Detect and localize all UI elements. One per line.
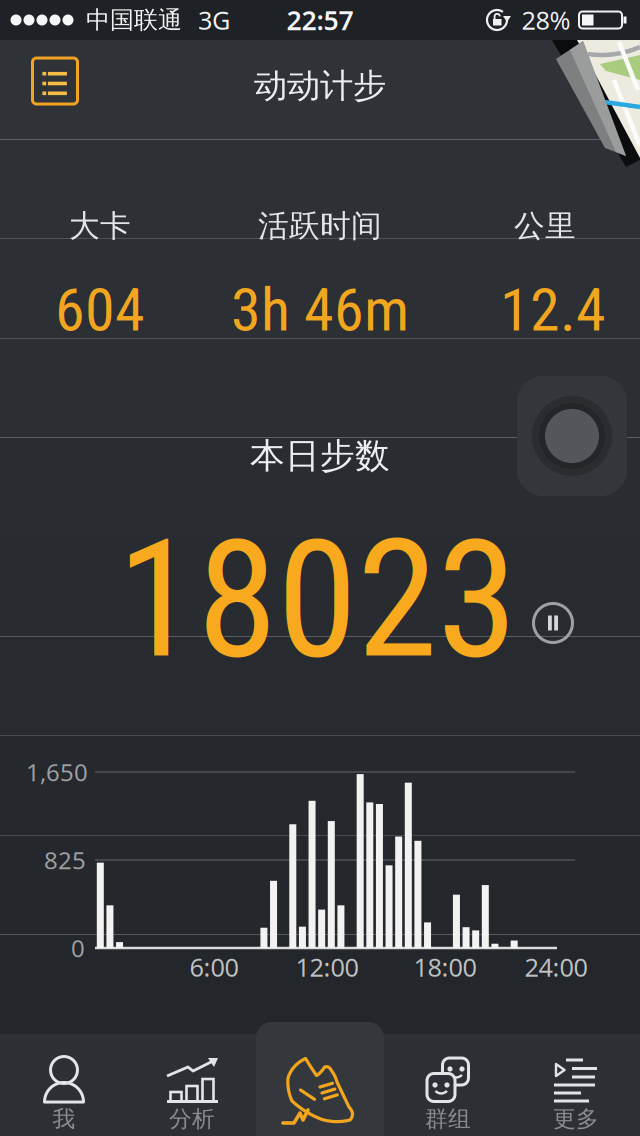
staticText: 0 bbox=[71, 932, 85, 964]
staticText: 中国联通 bbox=[86, 5, 182, 35]
staticText: 28% bbox=[521, 3, 570, 37]
staticText: 本日步数 bbox=[250, 435, 390, 477]
button[interactable]: 更多 bbox=[512, 1034, 640, 1136]
button[interactable]: 群组 bbox=[384, 1034, 512, 1136]
staticText: 12:00 bbox=[295, 950, 358, 984]
button[interactable]: 计步 bbox=[256, 1022, 384, 1136]
button[interactable]: 分析 bbox=[128, 1034, 256, 1136]
staticText: 大卡 bbox=[69, 207, 131, 245]
button[interactable]: Menu bbox=[29, 55, 81, 107]
staticText: 6:00 bbox=[189, 950, 238, 984]
staticText: 24:00 bbox=[524, 950, 587, 984]
staticText: 18023 bbox=[117, 505, 517, 695]
staticText: 我 bbox=[52, 1105, 75, 1133]
button[interactable]: Map bbox=[548, 40, 640, 170]
staticText: 动动计步 bbox=[254, 65, 386, 106]
staticText: 公里 bbox=[514, 207, 576, 245]
button[interactable]: 我 bbox=[0, 1034, 128, 1136]
staticText: 3h 46m bbox=[231, 275, 409, 345]
staticText: 群组 bbox=[425, 1105, 471, 1133]
button[interactable]: Pause bbox=[531, 601, 575, 645]
staticText: 825 bbox=[44, 844, 86, 876]
staticText: 活跃时间 bbox=[258, 207, 382, 245]
staticText: 18:00 bbox=[413, 950, 476, 984]
staticText: 1,650 bbox=[26, 756, 88, 788]
staticText: 分析 bbox=[169, 1105, 215, 1133]
button[interactable]: AssistiveTouch bbox=[517, 376, 627, 496]
staticText: 3G bbox=[198, 3, 230, 37]
staticText: 更多 bbox=[553, 1105, 599, 1133]
staticText: 22:57 bbox=[286, 2, 353, 38]
staticText: 604 bbox=[55, 275, 145, 345]
staticText: 12.4 bbox=[500, 275, 606, 345]
